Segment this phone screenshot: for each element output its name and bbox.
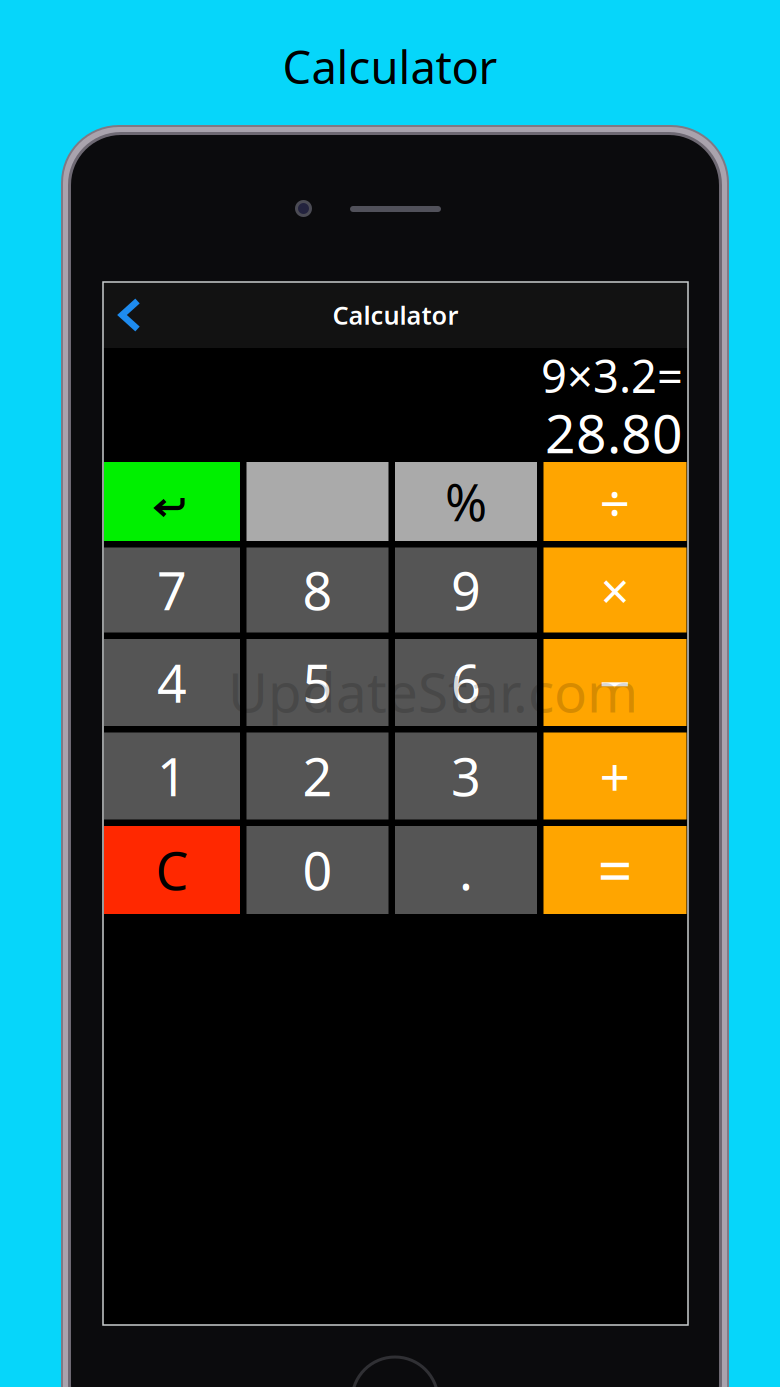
staticText: UpdateStar.com — [228, 655, 638, 728]
button[interactable]: Plus — [543, 732, 686, 819]
staticText: 0 — [302, 835, 332, 905]
staticText: 3 — [451, 741, 481, 811]
button[interactable]: Blank — [246, 462, 388, 541]
button[interactable]: 8 — [246, 547, 388, 632]
staticText: . — [459, 835, 473, 905]
staticText: ÷ — [599, 466, 630, 537]
staticText: 5 — [302, 648, 332, 717]
staticText: % — [445, 468, 487, 535]
button[interactable]: Decimal point — [395, 826, 537, 914]
staticText: + — [599, 741, 630, 811]
button[interactable]: 2 — [246, 732, 388, 819]
button[interactable]: 1 — [104, 732, 240, 819]
staticText: 9×3.2= — [541, 345, 683, 406]
staticText: 6 — [451, 648, 481, 717]
staticText: − — [599, 645, 631, 720]
staticText: 2 — [302, 741, 332, 811]
staticText: 8 — [302, 555, 332, 625]
staticText: 28.80 — [545, 397, 683, 468]
staticText: Calculator — [282, 36, 497, 97]
staticText: 4 — [157, 648, 187, 717]
button[interactable]: Equals — [543, 826, 686, 914]
staticText: 9 — [451, 555, 481, 625]
staticText: C — [155, 835, 188, 905]
button[interactable]: 5 — [246, 639, 388, 726]
button[interactable]: 4 — [104, 639, 240, 726]
button[interactable]: Multiply — [543, 547, 686, 632]
staticText: = — [597, 829, 632, 911]
button[interactable]: Minus — [543, 639, 686, 726]
staticText: Calculator — [332, 298, 458, 332]
button[interactable]: Divide — [543, 462, 686, 541]
button[interactable]: Enter — [104, 462, 240, 541]
button[interactable]: 0 — [246, 826, 388, 914]
button[interactable]: 3 — [395, 732, 537, 819]
button[interactable]: 9 — [395, 547, 537, 632]
button[interactable]: 6 — [395, 639, 537, 726]
button[interactable]: 7 — [104, 547, 240, 632]
button[interactable]: Back — [103, 282, 157, 348]
staticText: 1 — [157, 741, 187, 811]
button[interactable]: Percent — [395, 462, 537, 541]
staticText: 7 — [157, 555, 187, 625]
button[interactable]: Clear — [104, 826, 240, 914]
staticText: × — [600, 556, 629, 624]
